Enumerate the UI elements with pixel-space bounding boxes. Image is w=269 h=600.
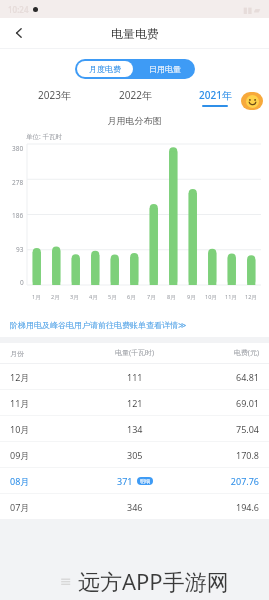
staticText: 0: [20, 278, 24, 287]
staticText: 207.76: [186, 475, 259, 487]
staticText: 8月: [167, 293, 176, 301]
staticText: 170.8: [186, 449, 259, 461]
staticText: 278: [12, 178, 24, 187]
staticText: 3月: [70, 293, 79, 301]
staticText: 12月: [10, 371, 83, 383]
staticText: 11月: [10, 397, 83, 409]
button[interactable]: Emoji badge: [241, 92, 263, 110]
staticText: 10月: [10, 423, 83, 435]
button[interactable]: 07月: [10, 494, 259, 519]
button[interactable]: Back: [6, 20, 32, 46]
staticText: 69.01: [186, 397, 259, 409]
button[interactable]: 2021年: [175, 88, 255, 107]
button[interactable]: 阶梯用电及峰谷电用户请前往电费账单查看详情≫: [0, 313, 269, 337]
staticText: 186: [12, 211, 24, 220]
staticText: 134: [127, 423, 143, 435]
staticText: 2021年: [199, 88, 232, 102]
button[interactable]: 2023年: [14, 88, 95, 105]
staticText: 371: [117, 475, 133, 487]
staticText: ▮▮ ▰: [243, 4, 261, 15]
staticText: ≡: [60, 573, 72, 589]
staticText: 单位: 千瓦时: [26, 132, 62, 141]
button[interactable]: 月度电费: [77, 61, 133, 77]
staticText: 月用电分布图: [0, 115, 269, 126]
staticText: 9月: [187, 293, 196, 301]
staticText: 380: [12, 144, 24, 153]
staticText: 2月: [51, 293, 60, 301]
button[interactable]: 12月: [10, 364, 259, 389]
staticText: 305: [127, 449, 143, 461]
staticText: 11月: [225, 293, 237, 301]
staticText: 2022年: [119, 88, 152, 102]
staticText: 电费(元): [186, 348, 259, 358]
button[interactable]: 日用电量: [135, 59, 195, 79]
staticText: 194.6: [186, 501, 259, 513]
button[interactable]: 10月: [10, 416, 259, 441]
staticText: 电量(千瓦时): [83, 348, 186, 358]
staticText: 6月: [127, 293, 136, 301]
staticText: 93: [16, 245, 24, 254]
button[interactable]: 08月: [10, 468, 259, 493]
staticText: 阶梯用电及峰谷电用户请前往电费账单查看详情≫: [10, 320, 187, 330]
staticText: 月度电费: [89, 64, 121, 74]
staticText: 电量电费: [111, 26, 159, 41]
staticText: 121: [127, 397, 143, 409]
button[interactable]: 2022年: [95, 88, 175, 105]
button[interactable]: 11月: [10, 390, 259, 415]
staticText: 08月: [10, 475, 83, 487]
staticText: 2023年: [38, 88, 71, 102]
staticText: 75.04: [186, 423, 259, 435]
staticText: 64.81: [186, 371, 259, 383]
button[interactable]: 09月: [10, 442, 259, 467]
staticText: 111: [127, 371, 143, 383]
staticText: 07月: [10, 501, 83, 513]
staticText: 10月: [205, 293, 217, 301]
staticText: 远方APP手游网: [78, 566, 229, 596]
staticText: 5月: [108, 293, 117, 301]
staticText: 1月: [32, 293, 41, 301]
staticText: 10:24: [8, 4, 29, 15]
staticText: 日用电量: [149, 64, 181, 74]
staticText: 4月: [89, 293, 98, 301]
staticText: 346: [127, 501, 143, 513]
staticText: 7月: [147, 293, 156, 301]
staticText: 月份: [10, 349, 83, 358]
staticText: 明细: [140, 478, 150, 484]
staticText: 09月: [10, 449, 83, 461]
staticText: 12月: [245, 293, 257, 301]
